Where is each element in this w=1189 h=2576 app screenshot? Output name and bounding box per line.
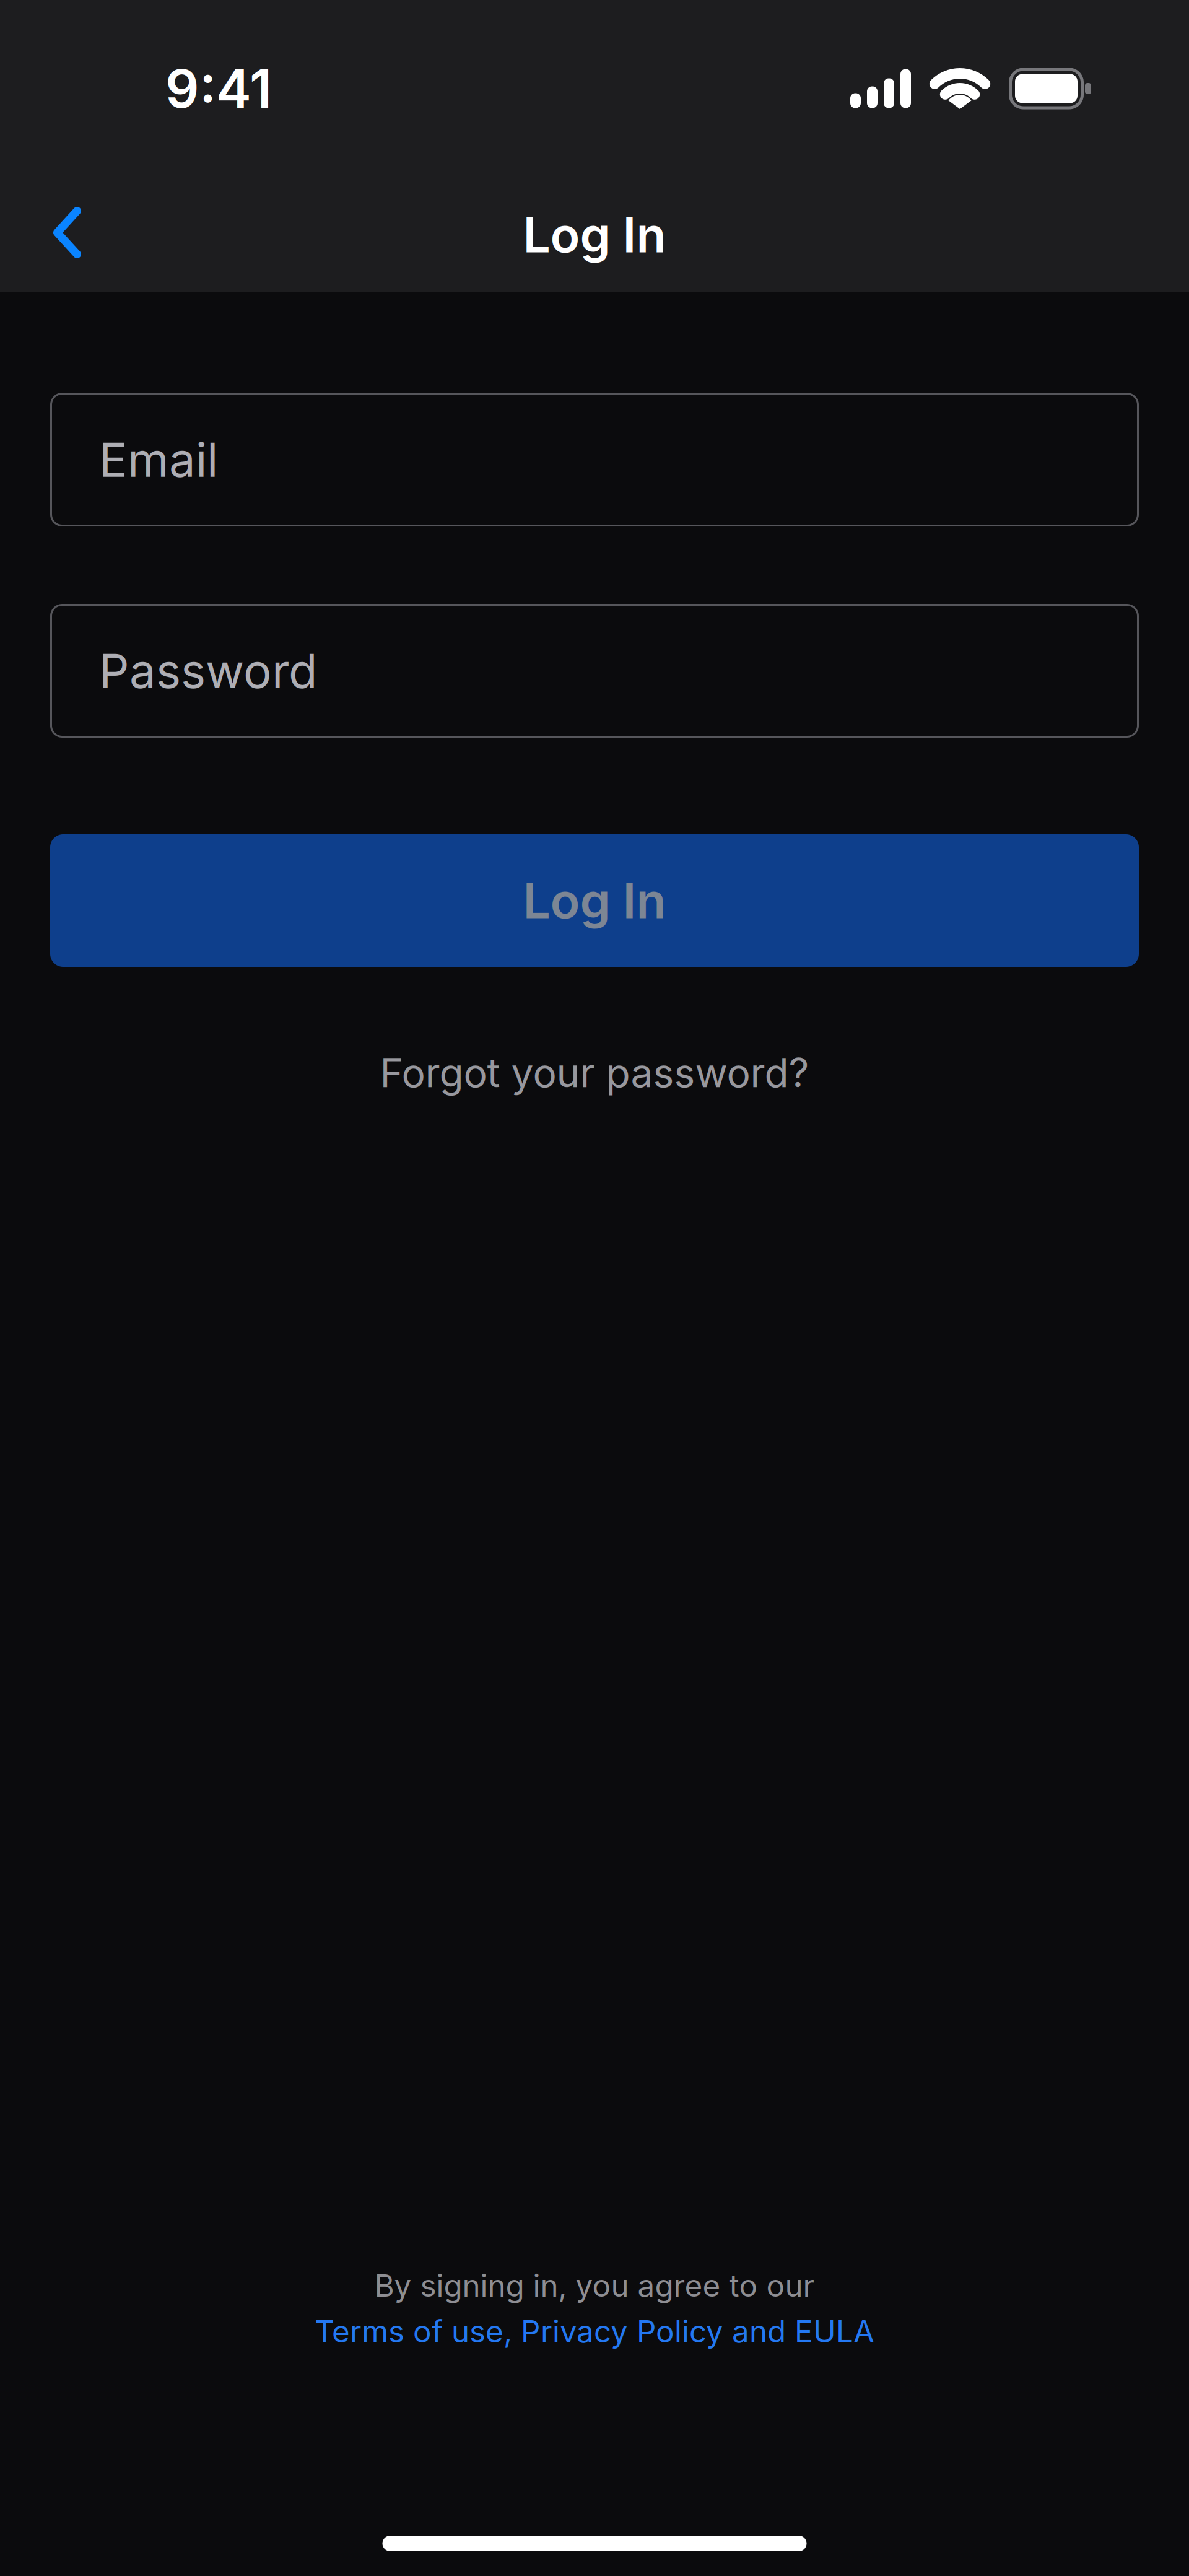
staticText: Log In — [523, 872, 666, 929]
button[interactable]: Password — [50, 604, 1139, 738]
staticText: By signing in, you agree to our — [374, 2267, 815, 2304]
staticText: Email — [99, 432, 218, 487]
button[interactable]: Terms of use, Privacy Policy and EULA — [315, 2307, 874, 2356]
button[interactable]: Back — [0, 204, 85, 266]
staticText: Password — [99, 643, 318, 699]
staticText: Forgot your password? — [380, 1049, 809, 1096]
staticText: Log In — [523, 206, 666, 263]
button[interactable]: Forgot your password? — [380, 1043, 809, 1102]
button[interactable]: Log In — [50, 834, 1139, 967]
staticText: 9:41 — [165, 57, 272, 120]
button[interactable]: Email — [50, 393, 1139, 526]
staticText: Terms of use, Privacy Policy and EULA — [315, 2313, 874, 2349]
